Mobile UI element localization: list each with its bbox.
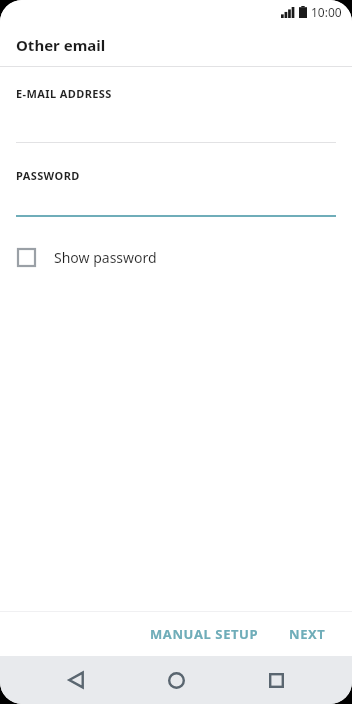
button[interactable]: Home	[152, 656, 200, 704]
button[interactable]: MANUAL SETUP	[140, 617, 269, 651]
button[interactable]: Show password	[0, 237, 352, 277]
staticText: E-MAIL ADDRESS	[16, 86, 112, 101]
staticText: NEXT	[289, 625, 326, 643]
staticText: PASSWORD	[16, 168, 80, 183]
staticText: Show password	[54, 248, 157, 267]
button[interactable]: NEXT	[279, 617, 336, 651]
button[interactable]: Recents	[252, 656, 300, 704]
staticText: Other email	[16, 35, 106, 55]
staticText: MANUAL SETUP	[150, 625, 259, 643]
button[interactable]: Back	[52, 656, 100, 704]
staticText: 10:00	[311, 4, 342, 20]
